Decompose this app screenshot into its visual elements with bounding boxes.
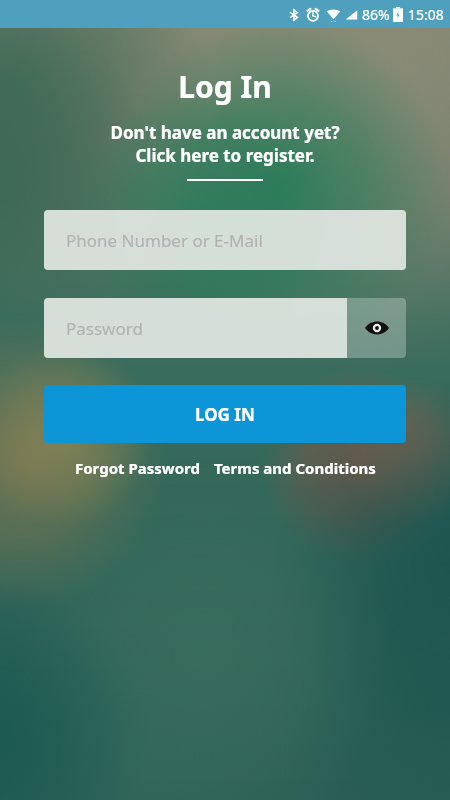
button[interactable]: LOG IN: [44, 385, 406, 443]
button[interactable]: Don't have an account yet? Click here to…: [0, 121, 450, 167]
button[interactable]: Forgot Password: [75, 458, 200, 478]
button[interactable]: Password: [44, 298, 347, 358]
staticText: 86%: [362, 5, 390, 24]
staticText: Forgot Password: [75, 458, 200, 478]
button[interactable]: Phone Number or E-Mail: [44, 210, 406, 270]
staticText: Don't have an account yet? Click here to…: [0, 121, 450, 167]
staticText: LOG IN: [195, 403, 255, 426]
button[interactable]: Terms and Conditions: [214, 458, 376, 478]
staticText: Log In: [0, 66, 450, 107]
button[interactable]: Show password: [347, 298, 406, 358]
staticText: Password: [66, 317, 143, 340]
staticText: Terms and Conditions: [214, 458, 376, 478]
staticText: Phone Number or E-Mail: [66, 229, 263, 252]
staticText: 15:08: [408, 5, 444, 24]
